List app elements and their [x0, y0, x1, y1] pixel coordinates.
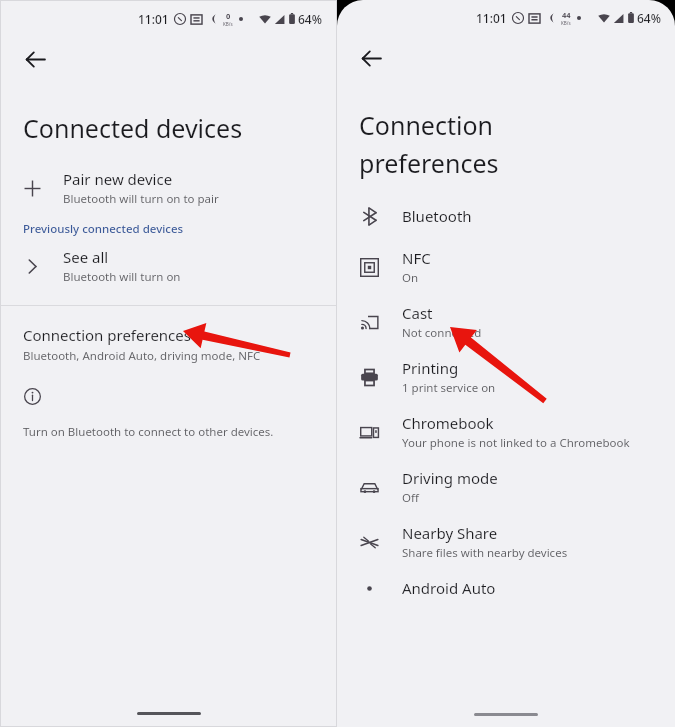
staticText: 11:01	[476, 10, 507, 26]
staticText: Chromebook	[402, 413, 494, 433]
button[interactable]: Printing	[337, 358, 675, 396]
staticText: Bluetooth, Android Auto, driving mode, N…	[23, 348, 261, 364]
staticText: Connection	[359, 108, 493, 142]
staticText: Cast	[402, 303, 433, 323]
staticText: Share files with nearby devices	[402, 545, 568, 561]
staticText: 44	[562, 10, 571, 20]
staticText: Bluetooth will turn on	[63, 269, 181, 285]
staticText: preferences	[359, 146, 499, 180]
button[interactable]: Connection preferences	[1, 323, 336, 368]
staticText: Off	[402, 490, 419, 506]
button[interactable]: Pair new device	[1, 167, 336, 209]
button[interactable]: Driving mode	[337, 468, 675, 506]
staticText: Bluetooth will turn on to pair	[63, 191, 219, 207]
staticText: Printing	[402, 358, 459, 378]
staticText: Turn on Bluetooth to connect to other de…	[23, 424, 274, 440]
staticText: Android Auto	[402, 578, 496, 598]
button[interactable]: Back	[13, 37, 57, 81]
staticText: NFC	[402, 248, 431, 268]
staticText: Your phone is not linked to a Chromebook	[402, 435, 630, 451]
staticText: 64%	[637, 10, 661, 26]
staticText: Pair new device	[63, 169, 173, 189]
staticText: Nearby Share	[402, 523, 498, 543]
staticText: Previously connected devices	[23, 221, 184, 237]
staticText: Not connected	[402, 325, 482, 341]
button[interactable]: Android Auto	[337, 578, 675, 598]
button[interactable]: Nearby Share	[337, 523, 675, 561]
staticText: Connected devices	[23, 111, 243, 145]
staticText: KB/s	[223, 21, 233, 27]
button[interactable]: NFC	[337, 248, 675, 286]
button[interactable]: Back	[349, 36, 393, 80]
button[interactable]: Bluetooth	[337, 206, 675, 226]
staticText: 1 print service on	[402, 380, 496, 396]
staticText: On	[402, 270, 419, 286]
staticText: KB/s	[561, 20, 571, 26]
staticText: Connection preferences	[23, 325, 191, 345]
staticText: Driving mode	[402, 468, 498, 488]
button[interactable]: Chromebook	[337, 413, 675, 451]
button[interactable]: Cast	[337, 303, 675, 341]
button[interactable]: See all	[1, 245, 336, 287]
staticText: 64%	[298, 11, 322, 27]
staticText: Bluetooth	[402, 206, 472, 226]
staticText: 11:01	[138, 11, 169, 27]
staticText: 0	[226, 11, 231, 21]
staticText: See all	[63, 247, 109, 267]
